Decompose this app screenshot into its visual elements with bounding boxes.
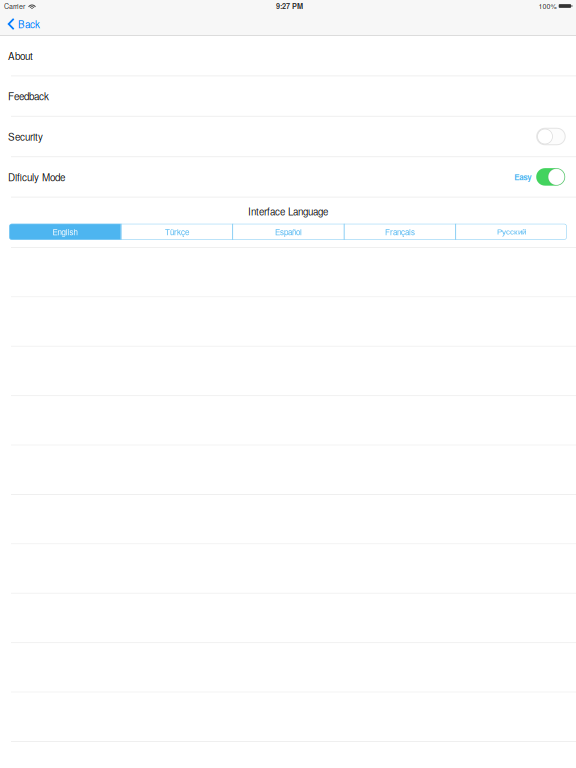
staticText: Türkçe (165, 226, 189, 237)
staticText: Feedback (8, 89, 49, 103)
button[interactable]: About (0, 36, 576, 75)
button[interactable]: Back (0, 12, 48, 35)
staticText: Dificuly Mode (8, 170, 65, 184)
button[interactable]: Español (232, 224, 344, 240)
button[interactable]: Türkçe (121, 224, 232, 240)
staticText: Back (18, 17, 40, 31)
staticText: Easy (514, 171, 531, 183)
button[interactable]: Français (344, 224, 455, 240)
staticText: 9:27 PM (276, 1, 303, 11)
staticText: English (52, 226, 77, 237)
staticText: Español (275, 226, 302, 237)
button[interactable]: Dificuly Mode (0, 157, 576, 197)
button[interactable]: Русский (455, 224, 567, 240)
staticText: About (8, 49, 33, 63)
button[interactable]: Security (537, 128, 565, 145)
staticText: Français (385, 226, 415, 237)
staticText: Security (8, 129, 43, 143)
button[interactable]: Feedback (0, 76, 576, 116)
button[interactable]: Security (0, 117, 576, 156)
button[interactable]: Dificuly Mode (536, 168, 565, 186)
button[interactable]: English (9, 224, 121, 240)
staticText: Carrier (4, 1, 25, 11)
staticText: 100% (538, 1, 556, 11)
staticText: Русский (497, 227, 526, 236)
staticText: Interface Language (248, 204, 328, 218)
